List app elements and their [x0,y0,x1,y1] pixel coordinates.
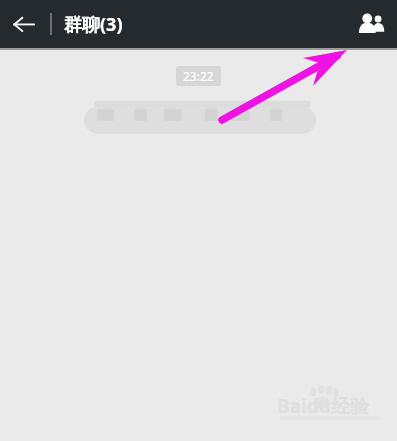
staticText: Baidu经验 [277,393,370,419]
button[interactable]: Group members [345,0,397,48]
staticText: 23:22 [183,68,214,84]
staticText: 群聊(3) [64,12,123,37]
button[interactable]: Back [0,0,48,48]
